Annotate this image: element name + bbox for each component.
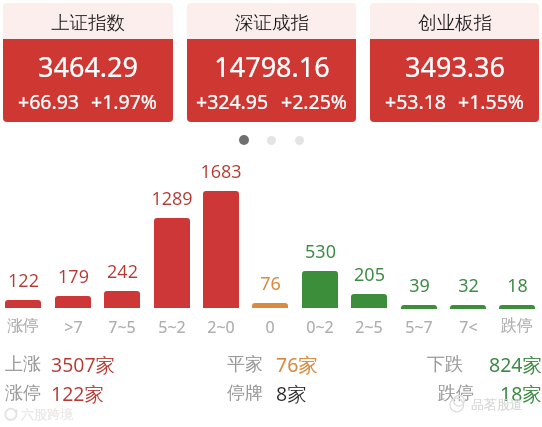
button[interactable]: 上证指数 (3, 3, 173, 122)
staticText: 创业板指 (418, 11, 492, 34)
staticText: 14798.16 (214, 48, 330, 85)
button[interactable]: 创业板指 (370, 3, 539, 122)
staticText: +1.97% (91, 88, 158, 115)
staticText: 跌停 (501, 316, 533, 336)
staticText: +1.55% (458, 88, 525, 115)
staticText: 深证成指 (235, 11, 309, 34)
button[interactable]: 上涨 (5, 351, 116, 378)
staticText: 205 (354, 262, 385, 287)
staticText: 1289 (151, 186, 193, 211)
staticText: 涨停 (5, 382, 41, 405)
staticText: 2~5 (355, 316, 383, 338)
staticText: 六股跨境 (21, 406, 73, 422)
staticText: 179 (58, 264, 89, 289)
staticText: >7 (64, 316, 83, 338)
button[interactable]: Page 2 (267, 136, 276, 145)
staticText: 18 (507, 273, 528, 298)
staticText: 242 (107, 259, 138, 284)
staticText: 停牌 (227, 382, 263, 405)
staticText: 5~2 (158, 316, 186, 338)
button[interactable]: 涨停 (5, 380, 104, 407)
staticText: 1683 (200, 159, 242, 184)
staticText: +324.95 (196, 88, 269, 115)
staticText: 32 (458, 273, 479, 298)
staticText: +2.25% (281, 88, 348, 115)
staticText: 3507家 (51, 351, 116, 378)
staticText: 76 (260, 271, 281, 296)
staticText: 2~0 (207, 316, 235, 338)
staticText: 122 (8, 268, 39, 293)
staticText: 824家 (489, 351, 542, 378)
staticText: 18家 (500, 380, 542, 407)
staticText: 上涨 (5, 353, 41, 376)
staticText: 122家 (51, 380, 104, 407)
staticText: +66.93 (18, 88, 79, 115)
staticText: 0~2 (306, 316, 334, 338)
staticText: 下跌 (427, 353, 463, 376)
staticText: 品茗股道 (471, 396, 523, 412)
staticText: 平家 (227, 353, 263, 376)
staticText: 0 (265, 316, 275, 338)
staticText: +53.18 (385, 88, 446, 115)
button[interactable]: Page 1 (239, 135, 249, 145)
staticText: 7< (459, 316, 478, 338)
staticText: 3464.29 (38, 48, 138, 85)
button[interactable]: Page 3 (295, 136, 304, 145)
staticText: 跌停 (438, 382, 474, 405)
button[interactable]: 平家 (227, 351, 318, 378)
staticText: 76家 (276, 351, 318, 378)
staticText: 上证指数 (51, 11, 125, 34)
button[interactable]: 停牌 (227, 380, 307, 407)
staticText: 39 (409, 273, 430, 298)
staticText: 530 (305, 239, 336, 264)
staticText: 8家 (276, 380, 307, 407)
staticText: 7~5 (108, 316, 136, 338)
staticText: 3493.36 (405, 48, 505, 85)
staticText: 5~7 (405, 316, 433, 338)
button[interactable]: 深证成指 (187, 3, 356, 122)
staticText: 涨停 (7, 316, 39, 336)
